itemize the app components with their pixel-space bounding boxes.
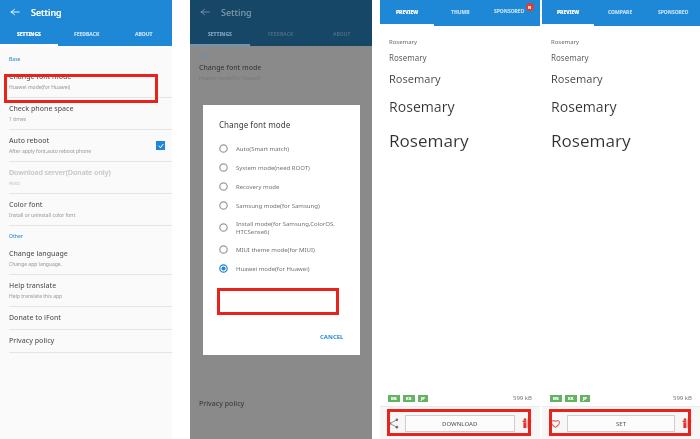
- staticText: THUMB: [451, 9, 470, 16]
- staticText: Download server(Donate only): [9, 168, 111, 178]
- staticText: Rosemary: [551, 97, 617, 116]
- staticText: SPONSORED: [494, 8, 525, 15]
- staticText: SETTINGS: [208, 31, 232, 38]
- button[interactable]: SET: [567, 415, 675, 432]
- staticText: Huawei mode(for Huawei): [199, 75, 261, 82]
- staticText: Base: [199, 53, 211, 60]
- other: Gift: [521, 417, 533, 429]
- button[interactable]: SETTINGS: [0, 24, 58, 44]
- other: Share: [387, 417, 400, 430]
- button[interactable]: Recovery mode: [219, 177, 348, 196]
- staticText: Rosemary: [389, 38, 418, 46]
- button[interactable]: Gift: [519, 415, 535, 431]
- button[interactable]: ABOUT: [311, 24, 372, 44]
- staticText: ABOUT: [333, 31, 351, 38]
- staticText: Rosemary: [389, 129, 469, 152]
- button[interactable]: ABOUT: [115, 24, 172, 44]
- button[interactable]: Back: [198, 5, 212, 19]
- staticText: Auto reboot: [9, 136, 50, 146]
- button[interactable]: Change font mode: [0, 66, 172, 97]
- staticText: After apply font,auto reboot phone: [9, 148, 92, 155]
- button[interactable]: THUMB: [434, 0, 487, 24]
- staticText: Setting: [31, 6, 62, 18]
- button[interactable]: Huawei mode(for Huawei): [219, 259, 348, 278]
- staticText: Rosemary: [389, 52, 427, 63]
- button[interactable]: Share: [385, 415, 401, 431]
- staticText: JP: [421, 396, 425, 401]
- staticText: Change language: [9, 249, 68, 259]
- staticText: SET: [616, 420, 627, 428]
- staticText: Auto(Smart match): [236, 145, 290, 153]
- staticText: System mode(need ROOT): [236, 164, 310, 172]
- button[interactable]: Back: [8, 5, 22, 19]
- button[interactable]: System mode(need ROOT): [219, 158, 348, 177]
- staticText: N: [528, 5, 532, 10]
- button[interactable]: Help translate: [0, 275, 172, 306]
- staticText: Change font mode: [199, 63, 262, 73]
- staticText: FEEDBACK: [74, 31, 100, 38]
- button[interactable]: Donate to iFont: [0, 307, 172, 329]
- button[interactable]: Check phone space: [0, 98, 172, 129]
- other: Back: [200, 7, 210, 17]
- staticText: Huawei mode(for Huawei): [9, 84, 71, 91]
- staticText: Rosemary: [551, 38, 580, 46]
- staticText: Check phone space: [9, 104, 74, 114]
- staticText: Change app language.: [9, 261, 62, 268]
- button[interactable]: PREVIEW: [542, 0, 594, 24]
- staticText: SETTINGS: [17, 31, 41, 38]
- staticText: CANCEL: [320, 333, 344, 341]
- staticText: EN: [391, 396, 397, 401]
- button[interactable]: PREVIEW: [380, 0, 434, 24]
- button[interactable]: CANCEL: [316, 329, 348, 345]
- staticText: Rosemary: [551, 71, 603, 86]
- staticText: Help translate: [9, 281, 57, 291]
- staticText: Donate to iFont: [9, 313, 62, 323]
- staticText: Rosemary: [551, 52, 589, 63]
- button[interactable]: Favorite: [547, 415, 563, 431]
- staticText: KR: [406, 396, 412, 401]
- staticText: Color font: [9, 200, 43, 210]
- button[interactable]: FEEDBACK: [250, 24, 311, 44]
- staticText: DOWNLOAD: [442, 420, 478, 428]
- staticText: 599 kB: [513, 394, 532, 402]
- button[interactable]: SPONSORED: [647, 0, 700, 24]
- button[interactable]: COMPARE: [594, 0, 647, 24]
- staticText: JP: [583, 396, 587, 401]
- button[interactable]: MIUI theme mode(for MIUI): [219, 240, 348, 259]
- button[interactable]: Install mode(for Samsung,ColorOS, HTCSen…: [219, 215, 348, 240]
- staticText: Change font mode: [219, 119, 291, 130]
- other: Gift: [681, 417, 693, 429]
- button[interactable]: Change language: [0, 243, 172, 274]
- button[interactable]: Auto(Smart match): [219, 139, 348, 158]
- staticText: KR: [568, 396, 574, 401]
- staticText: Rosemary: [551, 129, 631, 152]
- button[interactable]: DOWNLOAD: [405, 415, 515, 432]
- staticText: COMPARE: [608, 9, 633, 16]
- staticText: EN: [553, 396, 559, 401]
- staticText: Rosemary: [389, 97, 455, 116]
- button[interactable]: Auto reboot: [0, 130, 172, 161]
- button[interactable]: Privacy policy: [0, 330, 172, 352]
- button[interactable]: FEEDBACK: [58, 24, 115, 44]
- button[interactable]: SETTINGS: [190, 24, 250, 44]
- button[interactable]: Gift: [679, 415, 695, 431]
- button[interactable]: Samsung mode(for Samsung): [219, 196, 348, 215]
- staticText: Huawei mode(for Huawei): [236, 265, 310, 273]
- other: Auto reboot enabled: [156, 141, 165, 150]
- staticText: FEEDBACK: [268, 31, 294, 38]
- staticText: MIUI theme mode(for MIUI): [236, 246, 315, 254]
- staticText: Rosemary: [389, 71, 441, 86]
- button[interactable]: Download server(Donate only): [0, 162, 172, 193]
- staticText: Recovery mode: [236, 183, 280, 191]
- staticText: ABOUT: [135, 31, 153, 38]
- staticText: Base: [9, 56, 21, 63]
- staticText: PREVIEW: [557, 9, 580, 16]
- staticText: Privacy policy: [199, 399, 245, 409]
- staticText: Samsung mode(for Samsung): [236, 202, 320, 210]
- staticText: Install or uninstall color font: [9, 212, 76, 219]
- button[interactable]: Color font: [0, 194, 172, 225]
- staticText: 1 times: [9, 116, 27, 123]
- button[interactable]: SPONSORED: [487, 0, 540, 24]
- staticText: Change font mode: [9, 72, 72, 82]
- staticText: SPONSORED: [658, 9, 689, 16]
